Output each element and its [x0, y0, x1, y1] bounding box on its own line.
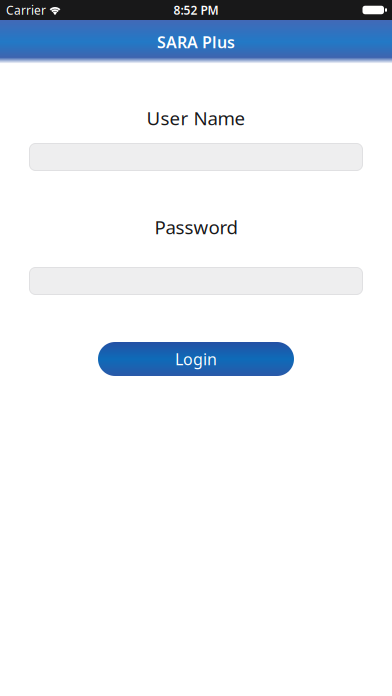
staticText: 8:52 PM	[173, 2, 218, 18]
staticText: Password	[154, 215, 237, 239]
staticText: SARA Plus	[157, 31, 235, 53]
staticText: User Name	[146, 106, 245, 130]
staticText: Carrier	[6, 2, 46, 18]
staticText: Login	[175, 348, 217, 370]
